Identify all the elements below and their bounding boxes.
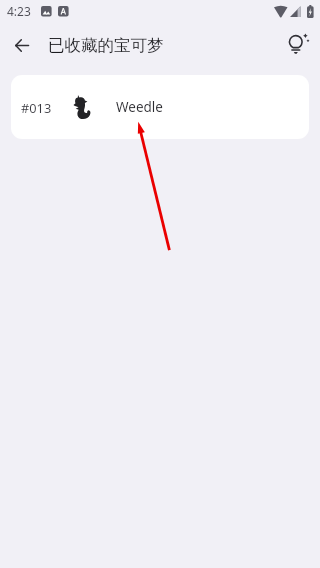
staticText: 已收藏的宝可梦 bbox=[48, 35, 164, 56]
staticText: #013 bbox=[21, 99, 52, 116]
button[interactable]: Tips bbox=[282, 29, 314, 61]
button[interactable]: #013 bbox=[11, 75, 309, 139]
staticText: 4:23 bbox=[7, 3, 31, 19]
staticText: Weedle bbox=[116, 98, 163, 116]
button[interactable]: Back bbox=[8, 31, 36, 59]
